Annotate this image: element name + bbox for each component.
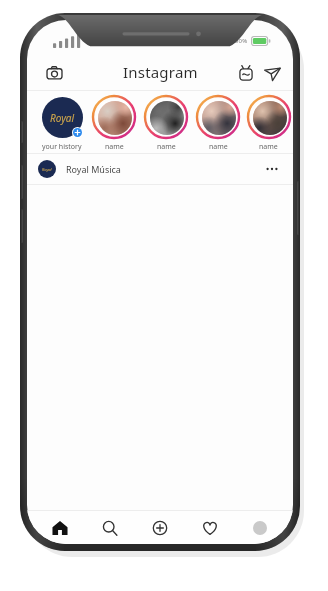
staticText: Royal <box>50 111 75 125</box>
staticText: 100% <box>231 37 248 45</box>
button[interactable]: Royal <box>36 95 88 152</box>
staticText: your history <box>42 142 82 152</box>
button[interactable]: More options <box>262 159 282 179</box>
staticText: name <box>157 142 176 152</box>
button[interactable]: Camera <box>39 58 69 88</box>
staticText: Royal <box>42 167 52 172</box>
staticText: name <box>105 142 124 152</box>
staticText: Royal Música <box>66 163 121 175</box>
button[interactable]: name <box>244 95 293 152</box>
staticText: Instagram <box>123 62 198 82</box>
button[interactable]: Search <box>87 512 133 543</box>
button[interactable]: Create <box>137 512 183 543</box>
button[interactable]: IGTV <box>233 60 259 86</box>
button[interactable]: Activity <box>187 512 233 543</box>
button[interactable]: name <box>140 95 192 152</box>
button[interactable]: Royal <box>27 154 293 184</box>
button[interactable]: Profile <box>237 512 283 543</box>
button[interactable]: name <box>88 95 140 152</box>
staticText: name <box>209 142 228 152</box>
staticText: name <box>259 142 278 152</box>
button[interactable]: name <box>192 95 244 152</box>
button[interactable]: Home <box>37 512 83 543</box>
button[interactable]: Direct messages <box>259 60 285 86</box>
